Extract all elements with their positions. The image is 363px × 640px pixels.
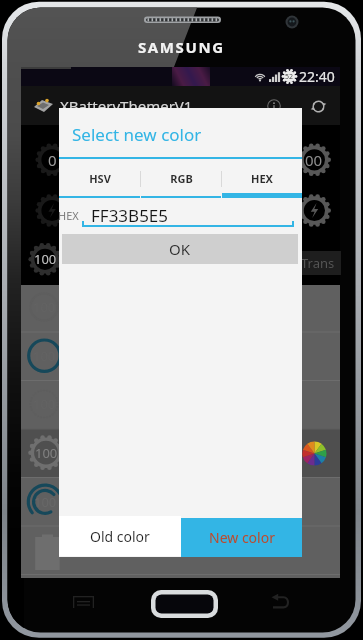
staticText: 0 — [48, 150, 57, 170]
button[interactable]: HSV — [59, 159, 140, 198]
button[interactable]: New color — [181, 518, 302, 557]
staticText: RGB — [170, 171, 193, 186]
staticText: 22:40 — [299, 67, 335, 86]
staticText: SAMSUNG — [138, 37, 225, 57]
staticText: 52 — [285, 72, 294, 82]
button[interactable]: HEX — [222, 159, 302, 198]
staticText: Old color — [90, 527, 150, 546]
button[interactable]: Info — [262, 94, 286, 118]
button[interactable]: Old color — [59, 516, 181, 556]
button[interactable]: Menu — [73, 596, 95, 610]
staticText: HEX — [251, 171, 273, 186]
staticText: 100 — [35, 444, 58, 462]
staticText: XBatteryThemerV1 — [60, 96, 193, 116]
staticText: HEX — [58, 208, 79, 223]
staticText: New color — [209, 528, 275, 547]
staticText: 00 — [305, 150, 323, 170]
staticText: Trans — [301, 254, 335, 272]
staticText: OK — [169, 239, 191, 259]
staticText: Select new color — [72, 123, 202, 146]
staticText: FF33B5E5 — [91, 204, 169, 227]
button[interactable]: Back — [271, 595, 292, 611]
button[interactable]: OK — [62, 234, 298, 264]
staticText: HSV — [89, 171, 111, 186]
staticText: 100 — [34, 493, 57, 511]
button[interactable]: Refresh — [306, 94, 330, 118]
button[interactable]: RGB — [141, 159, 221, 198]
staticText: 100 — [34, 250, 57, 268]
